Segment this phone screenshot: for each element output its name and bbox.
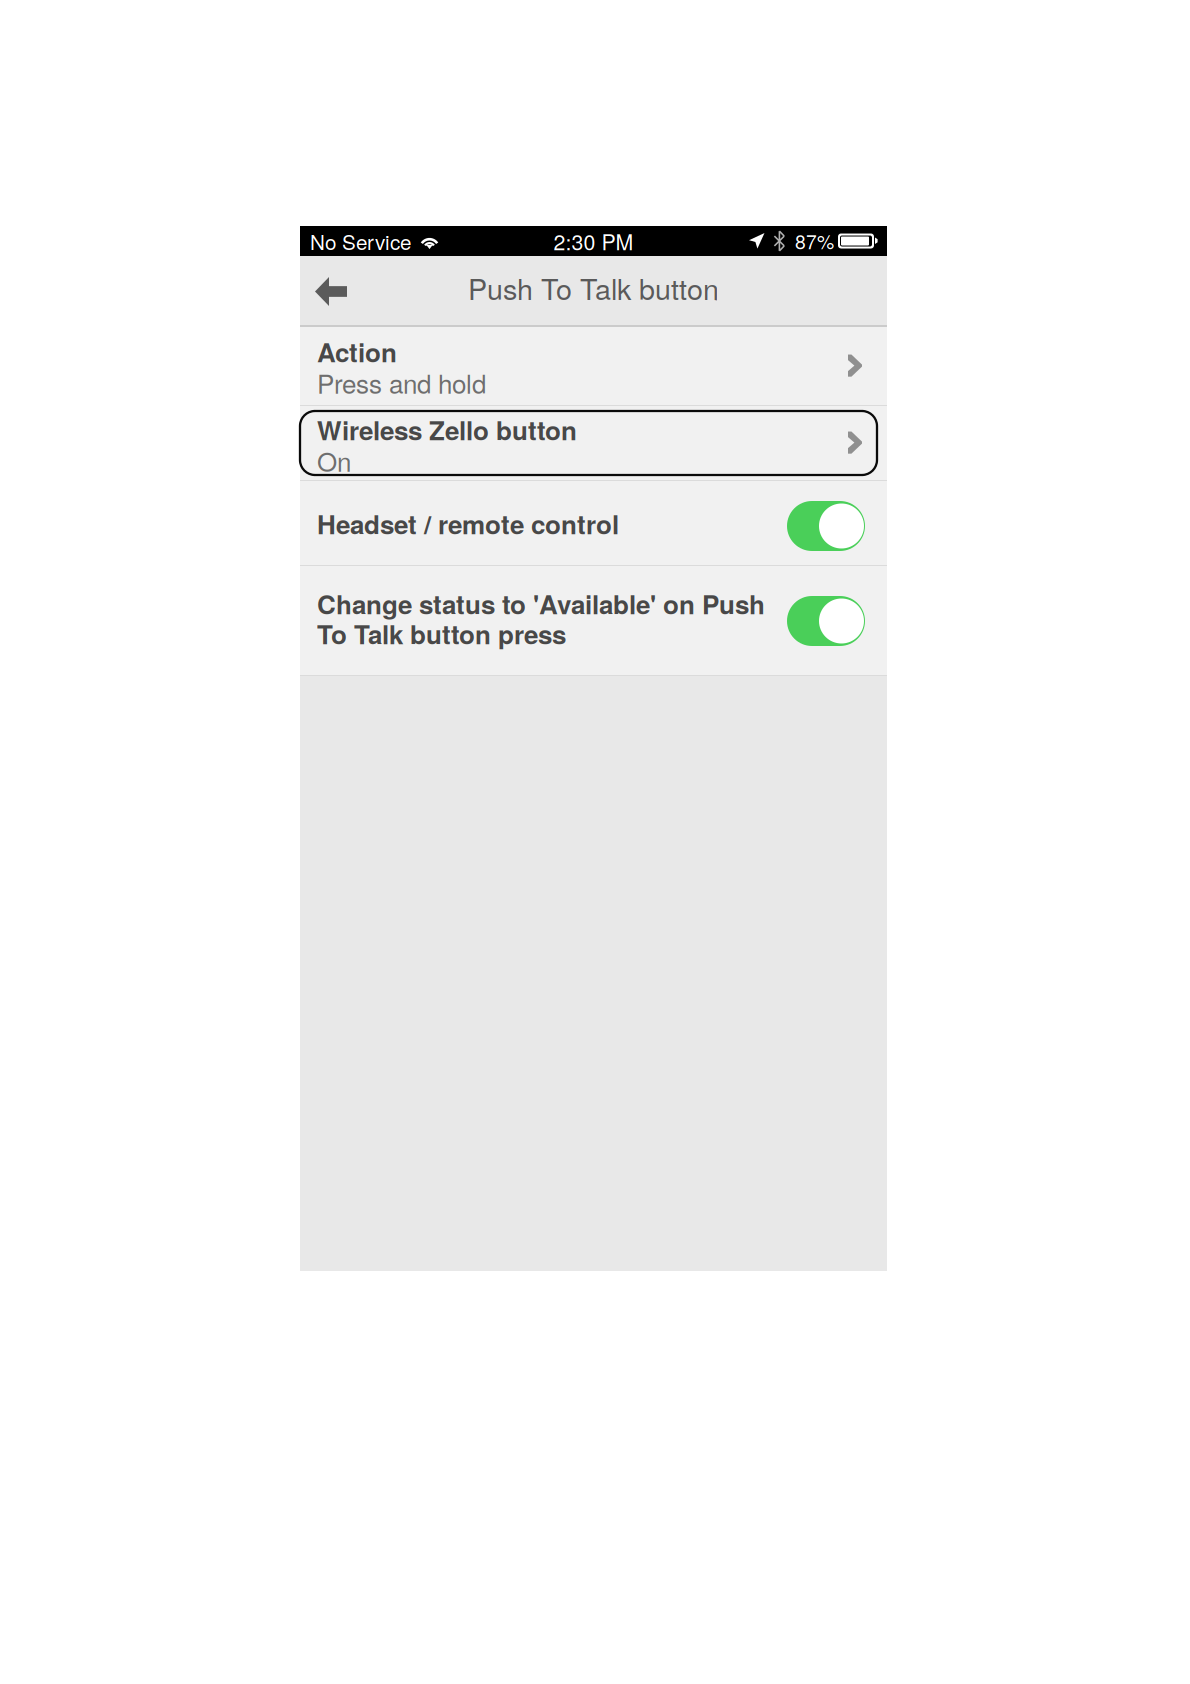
button[interactable]: Change status to 'Available' on Push [300,566,887,675]
button[interactable]: Headset / remote control [300,481,887,565]
staticText: 87% [795,227,834,255]
button[interactable]: Action [300,327,887,405]
staticText: Headset / remote control [317,505,619,542]
button[interactable]: Toggle Change status to 'Available' on P… [787,566,865,675]
staticText: Push To Talk button [468,267,719,308]
staticText: To Talk button press [317,615,566,652]
button[interactable]: Wireless Zello button [300,406,887,480]
staticText: Change status to 'Available' on Push [317,585,765,622]
staticText: Wireless Zello button [317,411,577,448]
staticText: 2:30 PM [553,226,633,256]
staticText: No Service [310,226,411,256]
staticText: On [317,442,351,479]
staticText: Press and hold [317,364,486,401]
button[interactable]: Toggle Headset / remote control [787,481,865,565]
staticText: Action [317,333,397,370]
button[interactable]: Back [300,256,362,325]
